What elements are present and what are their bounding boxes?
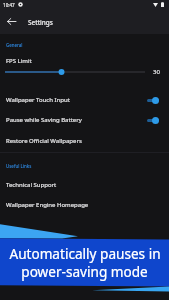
staticText: General xyxy=(6,42,23,48)
staticText: Pause while Saving Battery xyxy=(6,116,82,124)
staticText: Useful Links xyxy=(6,163,32,169)
button[interactable]: Automatically pauses in xyxy=(0,0,169,300)
button[interactable]: Back xyxy=(3,13,20,30)
staticText: power-saving mode xyxy=(21,262,148,281)
staticText: Wallpaper Engine Homepage xyxy=(6,201,89,209)
button[interactable]: FPS Limit xyxy=(0,52,169,78)
button[interactable]: Wallpaper Touch Input xyxy=(0,90,169,110)
button[interactable]: General xyxy=(0,37,169,53)
button[interactable]: Restore Official Wallpapers xyxy=(0,131,169,151)
staticText: 10:47 xyxy=(3,2,15,8)
staticText: 30 xyxy=(153,68,160,76)
staticText: Wallpaper Touch Input xyxy=(6,96,70,104)
staticText: Restore Official Wallpapers xyxy=(6,137,82,145)
button[interactable]: Technical Support xyxy=(0,175,169,195)
button[interactable]: Useful Links xyxy=(0,158,169,174)
staticText: Technical Support xyxy=(6,181,57,189)
staticText: Automatically pauses in xyxy=(9,244,161,263)
staticText: FPS Limit xyxy=(6,57,32,65)
staticText: Settings xyxy=(28,18,53,27)
button[interactable]: Pause while Saving Battery xyxy=(0,110,169,130)
button[interactable]: Wallpaper Engine Homepage xyxy=(0,195,169,215)
